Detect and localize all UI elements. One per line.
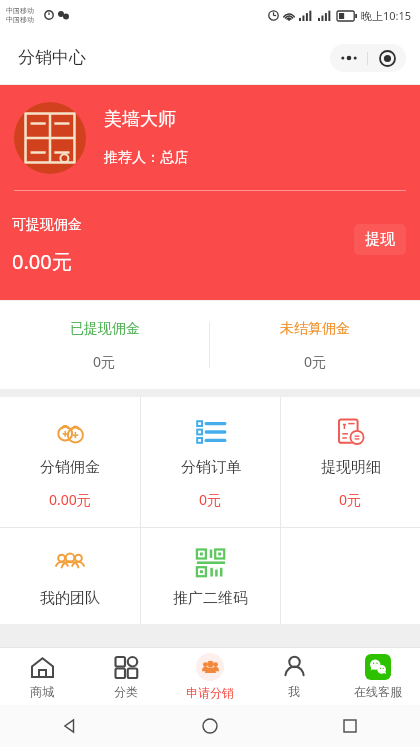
staticText: 0元 [93, 352, 116, 371]
staticText: 中国移动 [6, 15, 34, 24]
staticText: 我的团队 [40, 589, 100, 608]
staticText: 提现 [365, 230, 395, 249]
staticText: 可提现佣金 [12, 216, 82, 234]
staticText: 晚上10:15 [361, 8, 412, 23]
button[interactable]: 提现 [354, 224, 406, 255]
button[interactable]: 已提现佣金 [0, 301, 209, 389]
staticText: 分销中心 [18, 47, 86, 68]
button[interactable]: 分销佣金 [0, 397, 140, 527]
staticText: 推荐人：总店 [104, 149, 188, 167]
button[interactable]: 在线客服 [336, 648, 420, 705]
staticText: 申请分销 [186, 685, 234, 700]
staticText: 推广二维码 [173, 589, 248, 608]
button[interactable]: More [330, 44, 367, 72]
staticText: 0元 [304, 352, 327, 371]
staticText: 提现明细 [321, 458, 381, 477]
staticText: 分销佣金 [40, 458, 100, 477]
staticText: 我 [288, 684, 300, 699]
staticText: 未结算佣金 [280, 320, 350, 338]
button[interactable]: 申请分销 [168, 648, 252, 705]
staticText: 在线客服 [354, 684, 402, 699]
staticText: 已提现佣金 [70, 320, 140, 338]
button[interactable]: 我的团队 [0, 528, 140, 624]
button[interactable]: 分类 [84, 648, 168, 705]
staticText: 0.00元 [12, 248, 72, 275]
staticText: 美墙大师 [104, 108, 176, 131]
staticText: 商城 [30, 684, 54, 699]
button[interactable]: Home [140, 705, 280, 747]
button[interactable]: Recents [280, 705, 420, 747]
button[interactable]: 我 [252, 648, 336, 705]
button[interactable]: Target [368, 44, 406, 72]
button[interactable]: 未结算佣金 [210, 301, 420, 389]
button[interactable]: Back [0, 705, 140, 747]
staticText: 0元 [339, 490, 362, 509]
staticText: 0.00元 [49, 490, 91, 509]
button[interactable]: 分销订单 [141, 397, 280, 527]
button[interactable]: 提现明细 [281, 397, 420, 527]
staticText: 0元 [199, 490, 222, 509]
button[interactable]: 商城 [0, 648, 84, 705]
staticText: 分销订单 [181, 458, 241, 477]
button[interactable]: 推广二维码 [141, 528, 280, 624]
staticText: 中国移动 [6, 6, 34, 15]
staticText: 分类 [114, 684, 138, 699]
